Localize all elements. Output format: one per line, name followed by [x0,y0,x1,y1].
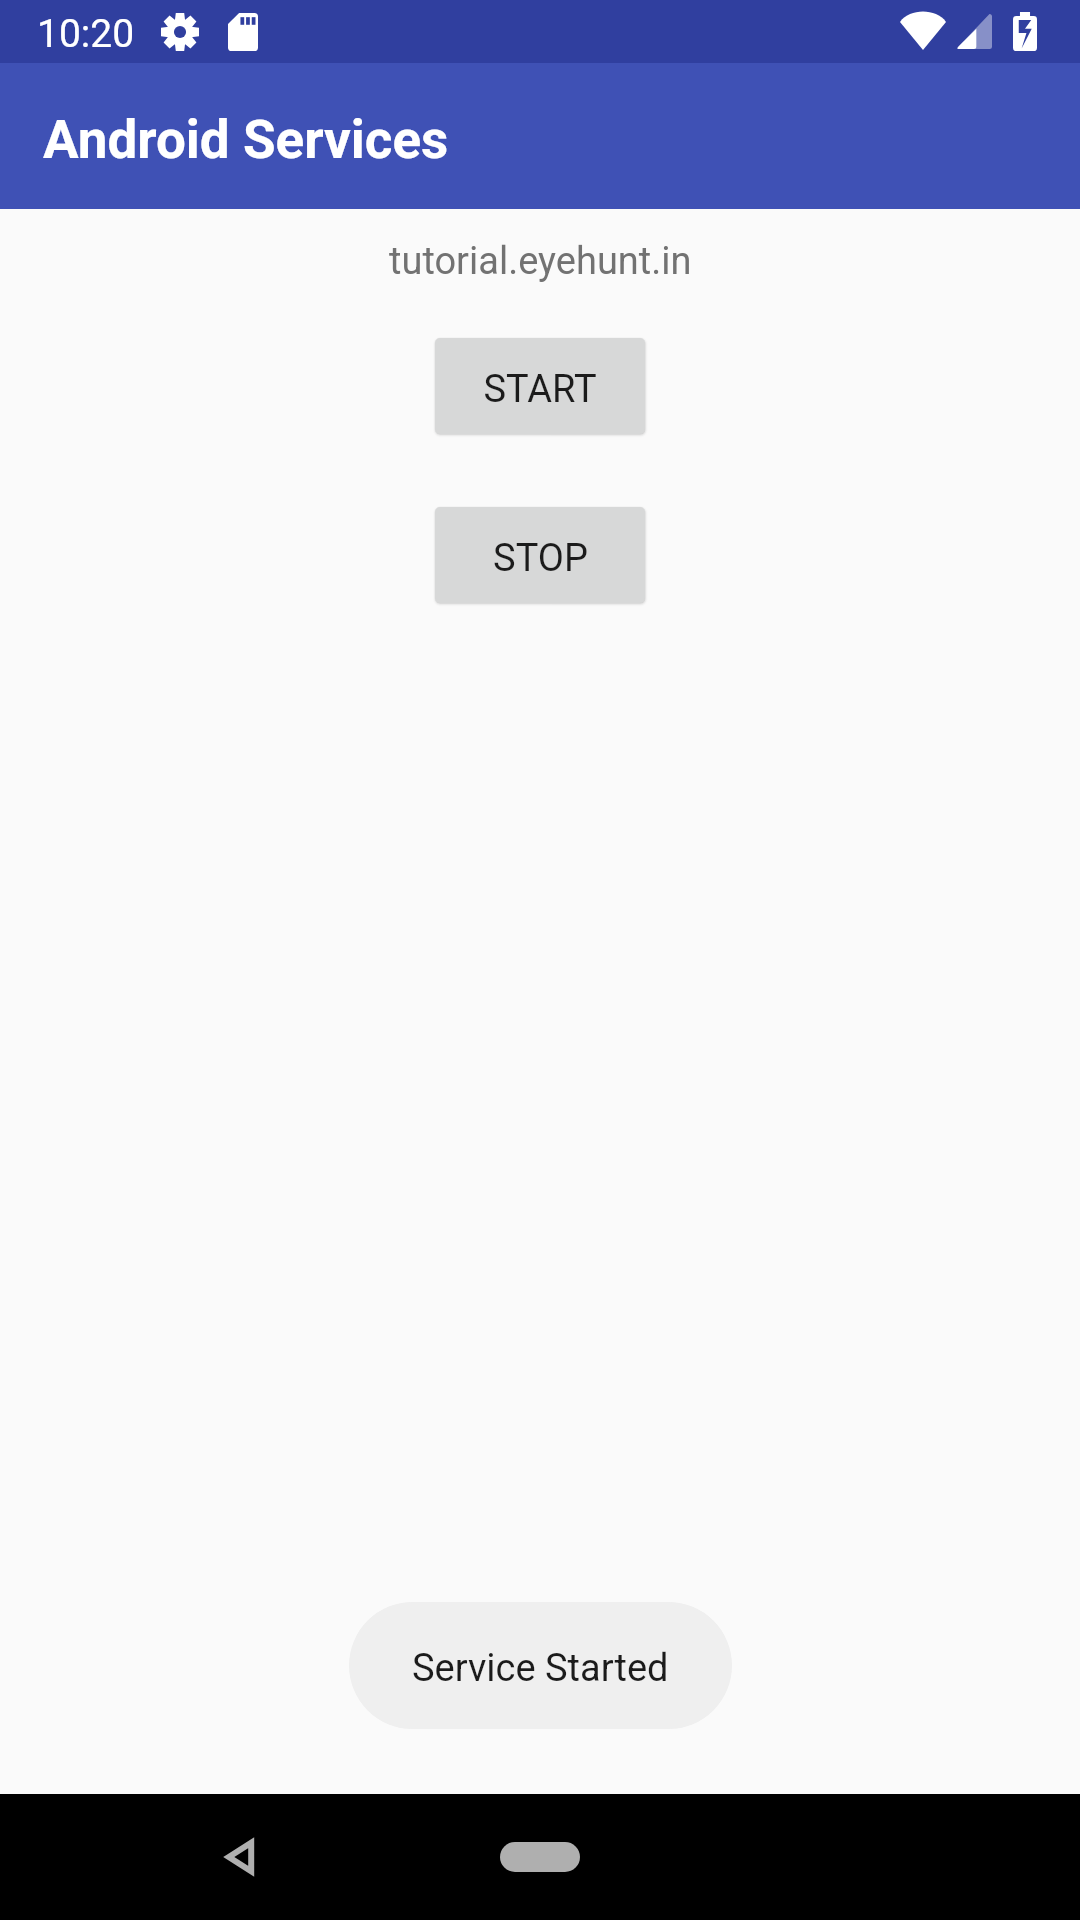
staticText: STOP [493,536,588,581]
staticText: Android Services [43,109,449,171]
button[interactable]: Home [500,1842,580,1872]
other: Back [226,1840,254,1874]
staticText: Service Started [412,1646,669,1691]
button[interactable]: START [435,338,645,434]
staticText: START [483,367,597,412]
staticText: tutorial.eyehunt.in [389,239,692,284]
button[interactable]: STOP [435,507,645,603]
staticText: 10:20 [37,11,135,57]
